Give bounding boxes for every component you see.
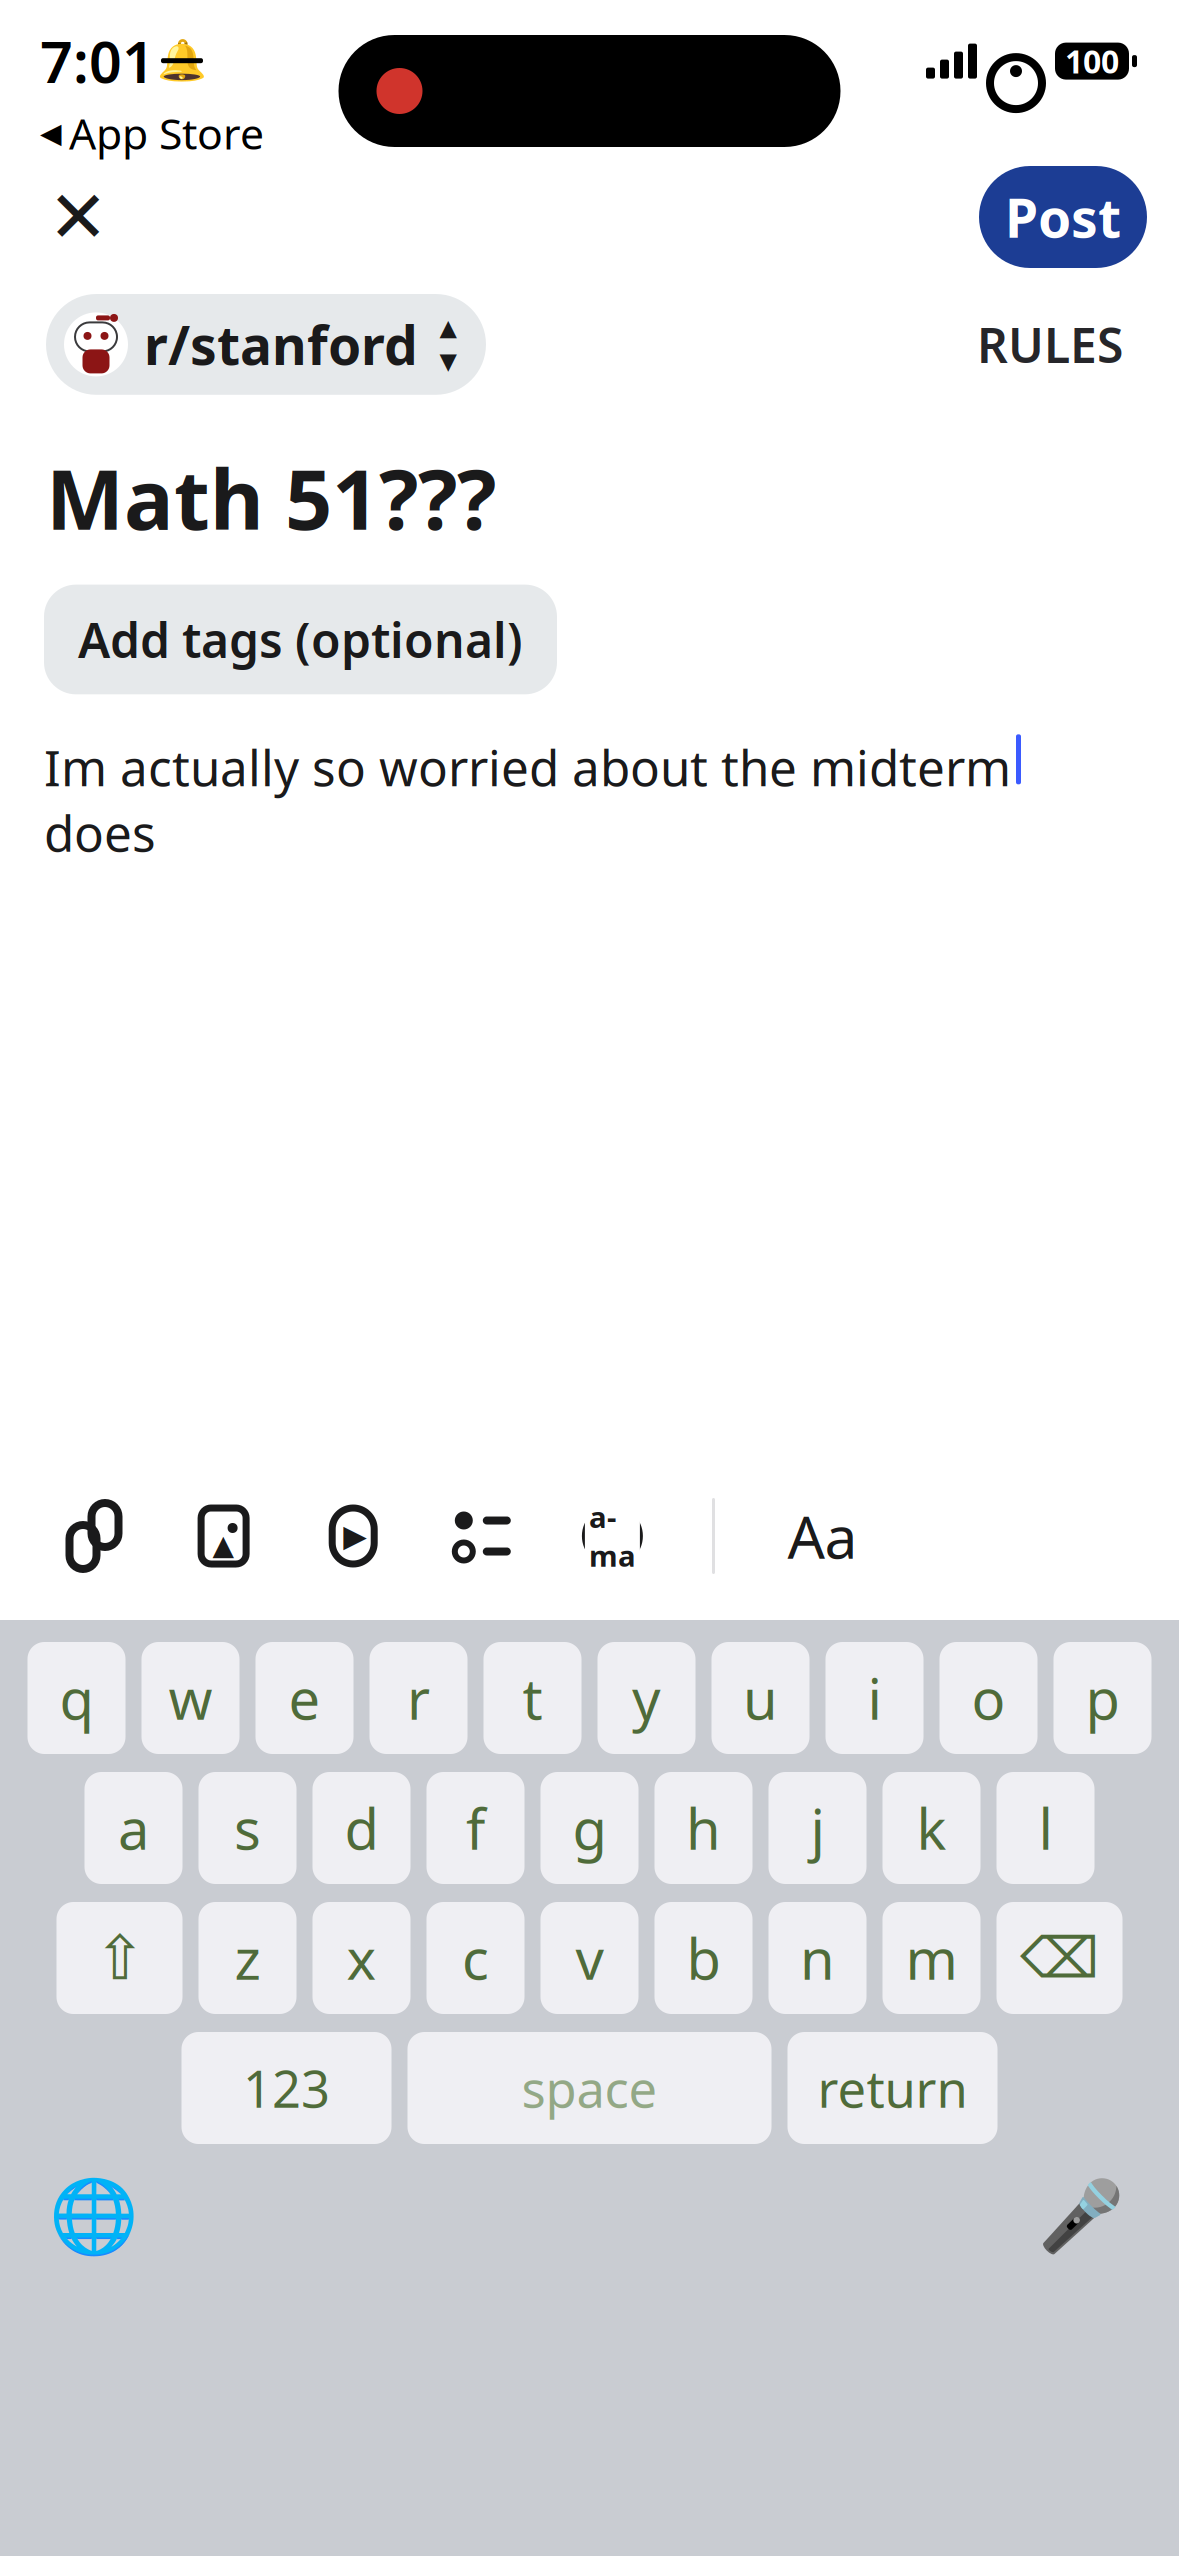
button[interactable]: q: [27, 1642, 125, 1754]
staticText: e: [288, 1661, 320, 1735]
button[interactable]: Next keyboard: [48, 2170, 140, 2262]
button[interactable]: r: [369, 1642, 467, 1754]
staticText: p: [1085, 1661, 1119, 1735]
button[interactable]: Dictation: [1035, 2170, 1127, 2262]
staticText: 🌐: [49, 2175, 139, 2257]
staticText: k: [916, 1791, 946, 1865]
staticText: d: [344, 1791, 378, 1865]
staticText: c: [462, 1921, 489, 1995]
staticText: i: [867, 1661, 881, 1735]
staticText: x: [346, 1921, 376, 1995]
staticText: return: [817, 2054, 967, 2122]
staticText: App Store: [69, 105, 264, 161]
button[interactable]: w: [141, 1642, 239, 1754]
button[interactable]: b: [654, 1902, 752, 2014]
staticText: w: [168, 1661, 212, 1735]
button[interactable]: l: [996, 1772, 1094, 1884]
button[interactable]: 123: [181, 2032, 391, 2144]
button[interactable]: m: [882, 1902, 980, 2014]
button[interactable]: j: [768, 1772, 866, 1884]
staticText: t: [522, 1661, 542, 1735]
staticText: Aa: [788, 1497, 858, 1575]
staticText: z: [234, 1921, 260, 1995]
staticText: f: [466, 1791, 485, 1865]
button[interactable]: u: [711, 1642, 809, 1754]
staticText: ▲: [439, 315, 456, 340]
button[interactable]: k: [882, 1772, 980, 1884]
staticText: 123: [243, 2054, 330, 2122]
button[interactable]: Post: [979, 166, 1147, 268]
button[interactable]: p: [1053, 1642, 1151, 1754]
staticText: y: [632, 1661, 661, 1735]
button[interactable]: Add video: [323, 1506, 383, 1566]
button[interactable]: Add link: [64, 1506, 124, 1566]
staticText: RULES: [977, 312, 1123, 376]
staticText: ▶: [343, 1519, 367, 1553]
staticText: o: [971, 1661, 1005, 1735]
staticText: ama: [589, 1497, 636, 1575]
staticText: ◀: [40, 117, 62, 149]
staticText: ▼: [439, 348, 456, 374]
button[interactable]: Im actually so worried about the midterm…: [0, 694, 1179, 865]
button[interactable]: Delete: [996, 1902, 1122, 2014]
button[interactable]: Add tags (optional): [44, 585, 557, 694]
button[interactable]: c: [426, 1902, 524, 2014]
staticText: ▲: [213, 1529, 235, 1561]
staticText: g: [572, 1791, 606, 1865]
button[interactable]: Add image: [194, 1506, 254, 1566]
button[interactable]: Close: [34, 173, 122, 261]
staticText: v: [575, 1921, 603, 1995]
button[interactable]: i: [825, 1642, 923, 1754]
button[interactable]: a: [84, 1772, 182, 1884]
staticText: h: [686, 1791, 721, 1865]
staticText: Im actually so worried about the midterm…: [44, 734, 1011, 865]
staticText: r: [407, 1661, 430, 1735]
button[interactable]: RULES: [965, 296, 1135, 392]
button[interactable]: z: [198, 1902, 296, 2014]
staticText: 7:01: [40, 23, 155, 99]
button[interactable]: return: [787, 2032, 997, 2144]
button[interactable]: y: [597, 1642, 695, 1754]
staticText: b: [686, 1921, 720, 1995]
button[interactable]: Math 51???: [0, 395, 1179, 553]
staticText: Math 51???: [46, 443, 496, 553]
button[interactable]: h: [654, 1772, 752, 1884]
staticText: a: [118, 1791, 149, 1865]
staticText: ✕: [48, 176, 108, 258]
staticText: q: [59, 1661, 93, 1735]
button[interactable]: Start an AMA: [582, 1506, 642, 1566]
staticText: j: [810, 1791, 824, 1865]
staticText: s: [234, 1791, 261, 1865]
button[interactable]: Shift: [56, 1902, 182, 2014]
button[interactable]: Text formatting: [785, 1506, 861, 1566]
staticText: l: [1038, 1791, 1052, 1865]
staticText: 🎤: [1038, 2176, 1124, 2256]
button[interactable]: r/stanford: [46, 294, 486, 395]
staticText: 100: [1065, 40, 1119, 82]
staticText: Post: [1005, 182, 1121, 252]
button[interactable]: o: [939, 1642, 1037, 1754]
button[interactable]: Add poll: [453, 1506, 513, 1566]
staticText: m: [905, 1921, 957, 1995]
button[interactable]: n: [768, 1902, 866, 2014]
button[interactable]: f: [426, 1772, 524, 1884]
button[interactable]: x: [312, 1902, 410, 2014]
staticText: space: [521, 2054, 657, 2122]
button[interactable]: s: [198, 1772, 296, 1884]
staticText: 🔔: [157, 38, 207, 83]
button[interactable]: d: [312, 1772, 410, 1884]
staticText: u: [743, 1661, 778, 1735]
button[interactable]: v: [540, 1902, 638, 2014]
staticText: n: [800, 1921, 835, 1995]
button[interactable]: space: [407, 2032, 771, 2144]
button[interactable]: e: [255, 1642, 353, 1754]
button[interactable]: g: [540, 1772, 638, 1884]
staticText: r/stanford: [144, 309, 418, 380]
button[interactable]: t: [483, 1642, 581, 1754]
staticText: ⇧: [94, 1923, 145, 1993]
staticText: Add tags (optional): [78, 608, 523, 671]
staticText: ⌫: [1020, 1926, 1099, 1990]
